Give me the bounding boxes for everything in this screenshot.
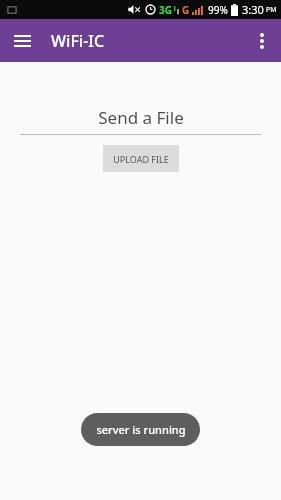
button[interactable]: UPLOAD FILE	[103, 145, 179, 172]
staticText: PM	[266, 5, 277, 15]
staticText: 3G	[159, 3, 172, 17]
button[interactable]: server is running	[81, 413, 200, 446]
button[interactable]: Open navigation drawer	[6, 25, 38, 57]
staticText: WiFi-IC	[51, 30, 105, 52]
staticText: G	[182, 3, 190, 17]
staticText: server is running	[96, 422, 186, 437]
staticText: Send a File	[98, 106, 184, 129]
staticText: 3:30	[242, 2, 264, 17]
staticText: UPLOAD FILE	[113, 153, 169, 165]
staticText: 99%	[208, 3, 228, 17]
button[interactable]: More options	[246, 25, 278, 57]
